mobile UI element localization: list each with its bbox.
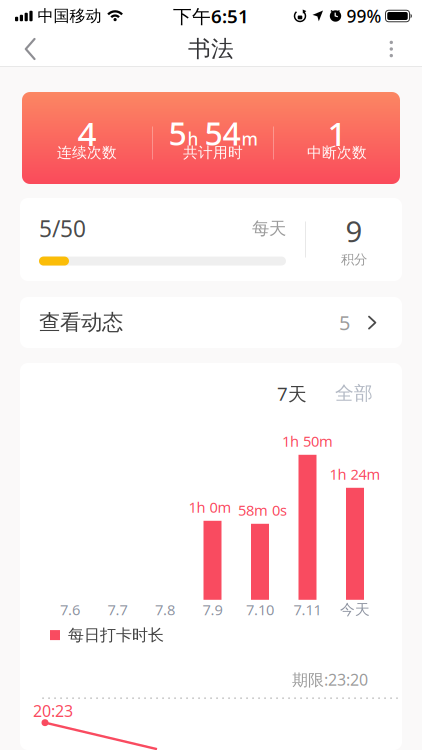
- button[interactable]: 全部: [335, 382, 373, 405]
- button[interactable]: 查看动态: [20, 297, 402, 348]
- staticText: 20:23: [33, 700, 73, 721]
- staticText: 每天: [252, 218, 286, 239]
- staticText: 99%: [346, 4, 381, 27]
- staticText: m: [241, 127, 257, 150]
- staticText: 5/50: [39, 213, 86, 243]
- staticText: 4: [77, 111, 96, 155]
- staticText: 下午6:51: [173, 4, 249, 28]
- staticText: 中断次数: [307, 143, 367, 161]
- button[interactable]: Back: [0, 32, 35, 66]
- staticText: 今天: [340, 600, 370, 618]
- staticText: 积分: [341, 251, 367, 268]
- staticText: 查看动态: [39, 309, 123, 336]
- staticText: 期限:23:20: [292, 669, 368, 690]
- staticText: 7.11: [293, 600, 321, 619]
- staticText: 1h 50m: [282, 431, 333, 451]
- staticText: 7.7: [107, 600, 127, 619]
- staticText: h: [187, 127, 203, 150]
- staticText: 书法: [188, 35, 234, 63]
- staticText: 54: [204, 112, 240, 154]
- staticText: 1: [327, 111, 346, 155]
- staticText: 1h 24m: [329, 464, 380, 484]
- button[interactable]: More: [390, 33, 422, 65]
- staticText: 7.9: [202, 600, 222, 619]
- button[interactable]: 7天: [277, 381, 307, 406]
- staticText: 1h 0m: [188, 497, 231, 517]
- staticText: 共计用时: [183, 143, 243, 161]
- staticText: 全部: [335, 382, 373, 405]
- staticText: 7.8: [155, 600, 175, 619]
- staticText: 7.6: [60, 600, 80, 619]
- staticText: 5: [168, 112, 186, 154]
- staticText: 58m 0s: [238, 500, 287, 520]
- staticText: 每日打卡时长: [68, 625, 164, 645]
- staticText: 7天: [277, 381, 307, 406]
- staticText: 中国移动: [38, 6, 102, 26]
- staticText: 5: [339, 309, 350, 336]
- staticText: 连续次数: [57, 143, 117, 161]
- staticText: 7.10: [246, 600, 274, 619]
- staticText: 9: [345, 211, 362, 250]
